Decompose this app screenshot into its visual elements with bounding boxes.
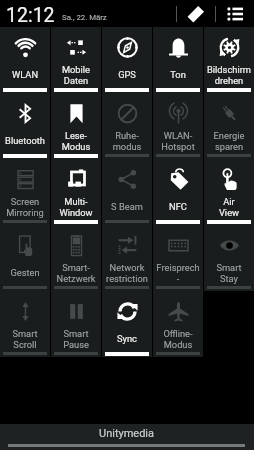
staticText: Screen Mirroring (0, 196, 50, 218)
staticText: NFC (153, 201, 203, 212)
staticText: Gesten (0, 267, 50, 278)
button[interactable]: Edit (177, 0, 215, 27)
button[interactable]: Ton (153, 27, 203, 93)
staticText: Lese- Modus (51, 130, 101, 152)
button[interactable]: Offline- Modus (153, 291, 203, 357)
button[interactable]: Freisprech - (153, 225, 203, 291)
staticText: Network restriction (102, 262, 152, 284)
staticText: WLAN (0, 69, 50, 80)
button[interactable]: GPS (102, 27, 152, 93)
button[interactable]: Smart Scroll (0, 291, 50, 357)
button[interactable]: Bluetooth (0, 93, 50, 159)
staticText: WLAN- Hotspot (153, 130, 203, 152)
button[interactable]: Lese- Modus (51, 93, 101, 159)
staticText: Sa., 22. März (62, 13, 107, 22)
button[interactable]: NFC (153, 159, 203, 225)
staticText: Sync (102, 333, 152, 344)
staticText: Bluetooth (0, 135, 50, 146)
button[interactable]: Gesten (0, 225, 50, 291)
staticText: GPS (102, 69, 152, 80)
button[interactable]: Sync (102, 291, 152, 357)
button[interactable]: Smart Stay (204, 225, 254, 291)
staticText: Mobile Daten (51, 64, 101, 86)
button[interactable]: Multi- Window (51, 159, 101, 225)
staticText: Offline- Modus (153, 328, 203, 350)
staticText: Smart Stay (204, 262, 254, 284)
staticText: Ton (153, 69, 203, 80)
button[interactable]: S Beam (102, 159, 152, 225)
staticText: S Beam (102, 201, 152, 212)
button[interactable]: WLAN- Hotspot (153, 93, 203, 159)
staticText: Air View (204, 196, 254, 218)
button[interactable]: Screen Mirroring (0, 159, 50, 225)
staticText: Multi- Window (51, 196, 101, 218)
button[interactable]: Unitymedia (0, 424, 254, 450)
button[interactable]: Air View (204, 159, 254, 225)
button[interactable]: Mobile Daten (51, 27, 101, 93)
button[interactable]: WLAN (0, 27, 50, 93)
staticText: Freisprech - (153, 262, 203, 284)
button[interactable]: List (216, 0, 254, 27)
staticText: Smart- Netzwerk (51, 262, 101, 284)
staticText: Smart Scroll (0, 328, 50, 350)
button[interactable]: Bildschirm drehen (204, 27, 254, 93)
staticText: Unitymedia (99, 427, 155, 440)
button[interactable]: Energie sparen (204, 93, 254, 159)
staticText: 12:12 (6, 4, 55, 27)
button[interactable]: Smart- Netzwerk (51, 225, 101, 291)
button[interactable]: Ruhe- modus (102, 93, 152, 159)
button[interactable]: Network restriction (102, 225, 152, 291)
button[interactable]: Smart Pause (51, 291, 101, 357)
staticText: Ruhe- modus (102, 130, 152, 152)
staticText: Energie sparen (204, 130, 254, 152)
staticText: Bildschirm drehen (204, 64, 254, 86)
staticText: Smart Pause (51, 328, 101, 350)
